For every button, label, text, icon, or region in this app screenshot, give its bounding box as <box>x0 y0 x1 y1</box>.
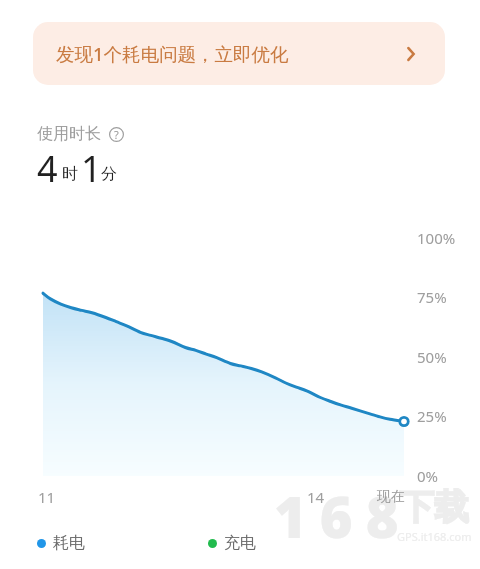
staticText: 使用时长 <box>37 124 101 144</box>
staticText: 时 <box>62 164 78 184</box>
staticText: 耗电 <box>53 533 85 553</box>
staticText: 4 <box>37 144 58 193</box>
staticText: 168 <box>274 478 412 554</box>
button[interactable]: 立即优化 <box>400 43 422 65</box>
staticText: 75% <box>417 287 447 307</box>
staticText: ? <box>114 127 119 142</box>
staticText: GPS.it168.com <box>397 529 472 544</box>
staticText: 现在 <box>377 488 405 506</box>
button[interactable]: 耗电 <box>37 533 85 553</box>
staticText: 0% <box>417 466 439 486</box>
staticText: 25% <box>417 406 447 426</box>
staticText: 充电 <box>224 533 256 553</box>
staticText: 下载 <box>399 485 469 529</box>
staticText: 100% <box>417 228 456 248</box>
button[interactable]: 帮助 <box>109 127 124 142</box>
staticText: 14 <box>307 487 325 507</box>
staticText: 50% <box>417 347 447 367</box>
button[interactable]: 充电 <box>208 533 256 553</box>
button[interactable]: 发现1个耗电问题，立即优化 <box>33 22 445 85</box>
staticText: 11 <box>38 487 56 507</box>
staticText: 分 <box>101 164 117 184</box>
staticText: 1 <box>81 144 102 193</box>
staticText: 发现1个耗电问题，立即优化 <box>56 41 289 66</box>
